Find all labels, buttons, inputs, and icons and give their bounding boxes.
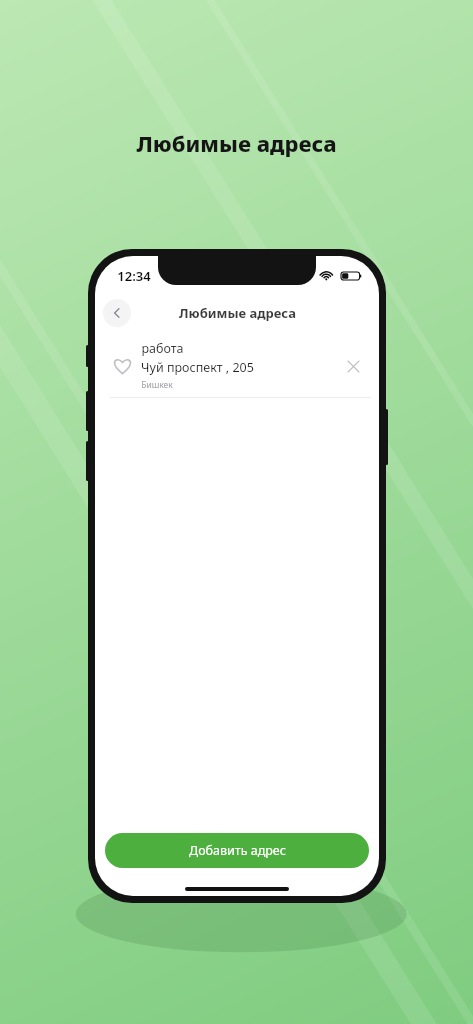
button[interactable]: Remove address — [341, 354, 365, 378]
staticText: Любимые адреса — [179, 304, 296, 322]
staticText: Добавить адрес — [189, 842, 286, 859]
staticText: Бишкек — [141, 379, 173, 391]
button[interactable]: работа — [95, 334, 379, 398]
staticText: Любимые адреса — [136, 128, 337, 158]
button[interactable]: Back — [103, 299, 131, 327]
staticText: работа — [141, 340, 184, 357]
staticText: 12:34 — [117, 267, 151, 285]
button[interactable]: Добавить адрес — [105, 833, 369, 868]
staticText: Чуй проспект , 205 — [141, 359, 254, 376]
